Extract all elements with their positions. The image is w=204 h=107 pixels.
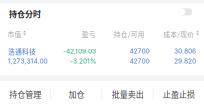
staticText: 持仓分时: [9, 8, 41, 20]
button[interactable]: 显示分时图: [175, 5, 195, 18]
staticText: -42,109.03: [63, 47, 96, 55]
staticText: -3.201%: [70, 57, 96, 65]
staticText: 持仓/可用: [114, 29, 145, 39]
staticText: 市值: [8, 29, 22, 39]
staticText: 成本/现价: [163, 29, 194, 39]
staticText: 浩通科技: [8, 46, 36, 56]
button[interactable]: 加仓: [51, 81, 101, 107]
staticText: 30.806: [174, 47, 196, 55]
staticText: 加仓: [68, 88, 84, 100]
staticText: 29.820: [174, 57, 196, 65]
staticText: 盈亏: [82, 29, 96, 39]
button[interactable]: 持仓管理: [0, 81, 50, 107]
staticText: 持仓管理: [9, 88, 41, 100]
button[interactable]: 止盈止损: [154, 81, 204, 107]
staticText: 批量卖出: [112, 88, 144, 100]
staticText: 1,273,314.00: [8, 57, 48, 65]
staticText: 42700: [129, 47, 149, 55]
staticText: 止盈止损: [163, 88, 195, 100]
staticText: 42700: [129, 57, 149, 65]
button[interactable]: 批量卖出: [102, 81, 153, 107]
